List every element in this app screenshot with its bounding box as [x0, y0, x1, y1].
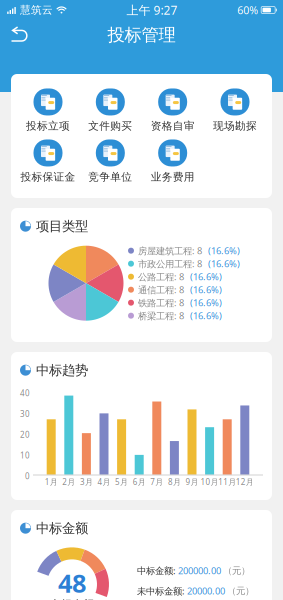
button[interactable]: 业务费用: [142, 139, 204, 184]
staticText: 200000.00: [178, 564, 221, 577]
staticText: (16.6%): [190, 309, 222, 322]
staticText: (16.6%): [190, 296, 222, 309]
staticText: 5月: [115, 476, 128, 487]
staticText: 30: [20, 409, 30, 419]
staticText: 11月: [218, 476, 236, 487]
staticText: 12月: [236, 476, 254, 487]
staticText: (16.6%): [190, 270, 222, 283]
staticText: （元）: [227, 585, 254, 597]
staticText: 7月: [150, 476, 163, 487]
staticText: 40: [20, 388, 30, 398]
staticText: 1月: [45, 476, 58, 487]
staticText: 60%: [237, 3, 261, 17]
staticText: 中标余额: [50, 598, 94, 600]
staticText: 资格自审: [151, 119, 195, 132]
staticText: 6月: [133, 476, 146, 487]
staticText: 房屋建筑工程: 8: [138, 244, 204, 257]
staticText: 中标金额: [36, 520, 88, 536]
button[interactable]: 资格自审: [142, 88, 204, 133]
button[interactable]: 文件购买: [79, 88, 141, 133]
staticText: 公路工程: 8: [138, 270, 186, 283]
staticText: (16.6%): [208, 257, 240, 270]
staticText: 8月: [168, 476, 181, 487]
staticText: 0: [25, 471, 30, 481]
button[interactable]: 投标保证金: [17, 139, 79, 184]
staticText: 中标金额:: [137, 564, 176, 577]
staticText: 文件购买: [88, 119, 132, 132]
staticText: 铁路工程: 8: [138, 296, 186, 309]
staticText: 桥梁工程: 8: [138, 309, 186, 322]
staticText: 未中标金额:: [137, 585, 185, 597]
staticText: 投标保证金: [20, 170, 75, 183]
staticText: 慧筑云: [17, 3, 56, 16]
staticText: 投标立项: [26, 119, 70, 132]
staticText: 4月: [97, 476, 110, 487]
staticText: 20: [20, 429, 30, 440]
staticText: 48: [58, 566, 86, 600]
button[interactable]: 现场勘探: [204, 88, 266, 133]
staticText: 通信工程: 8: [138, 283, 186, 296]
staticText: 现场勘探: [213, 119, 257, 132]
staticText: (16.6%): [208, 244, 240, 257]
button[interactable]: 投标立项: [17, 88, 79, 133]
staticText: 3月: [80, 476, 93, 487]
button[interactable]: Back: [0, 20, 40, 50]
staticText: （元）: [223, 565, 250, 576]
staticText: 9月: [185, 476, 198, 487]
staticText: 10: [20, 450, 30, 461]
staticText: 业务费用: [151, 170, 195, 183]
staticText: 市政公用工程: 8: [138, 257, 204, 270]
staticText: 中标趋势: [36, 362, 88, 378]
staticText: 2月: [62, 476, 75, 487]
staticText: 投标管理: [107, 24, 175, 46]
staticText: 20000.00: [187, 585, 225, 597]
staticText: 10月: [201, 476, 219, 487]
staticText: 上午 9:27: [127, 2, 178, 18]
staticText: 项目类型: [36, 218, 88, 234]
staticText: (16.6%): [190, 283, 222, 296]
staticText: 竞争单位: [88, 170, 132, 183]
button[interactable]: 竞争单位: [79, 139, 141, 184]
